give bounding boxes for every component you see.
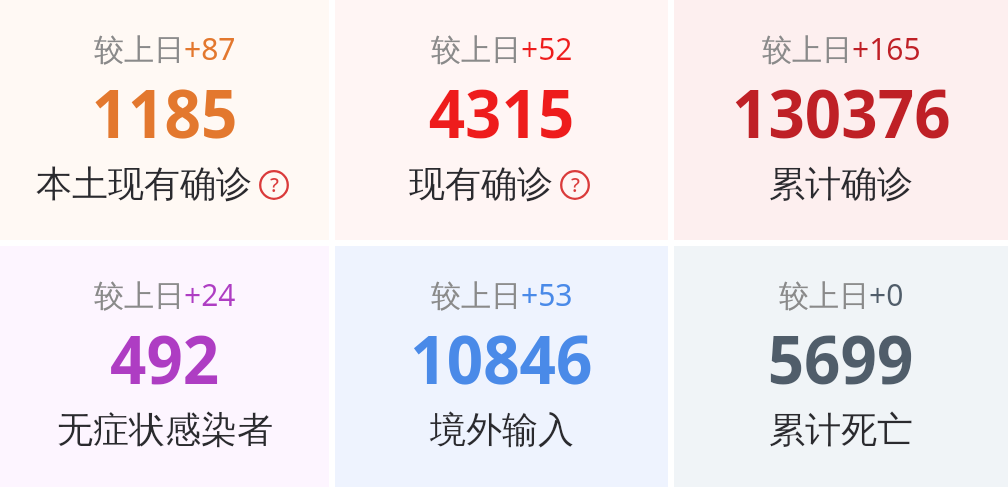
button[interactable]: Help [259,170,289,200]
staticText: 5699 [768,313,914,403]
staticText: ? [270,171,279,198]
button[interactable]: 较上日+0 [674,246,1008,487]
staticText: 较上日+87 [94,28,236,69]
staticText: 130376 [732,67,951,157]
staticText: 较上日+0 [779,274,904,315]
button[interactable]: 较上日+24 [0,246,329,487]
staticText: 较上日+52 [431,28,573,69]
staticText: 较上日+24 [94,274,236,315]
button[interactable]: Help [560,170,590,200]
staticText: 境外输入 [430,407,574,452]
button[interactable]: 较上日+87 [0,0,329,240]
staticText: ? [571,171,580,198]
staticText: 较上日+53 [431,274,573,315]
staticText: 较上日+165 [762,28,921,69]
staticText: 累计死亡 [769,407,913,452]
button[interactable]: 较上日+165 [674,0,1008,240]
staticText: 4315 [429,67,575,157]
button[interactable]: 较上日+52 [335,0,668,240]
staticText: 现有确诊 [409,161,553,206]
staticText: 492 [110,313,220,403]
staticText: 本土现有确诊 [36,161,252,206]
staticText: 1185 [92,67,238,157]
button[interactable]: 较上日+53 [335,246,668,487]
staticText: 累计确诊 [769,161,913,206]
staticText: 无症状感染者 [57,407,273,452]
staticText: 10846 [410,313,593,403]
